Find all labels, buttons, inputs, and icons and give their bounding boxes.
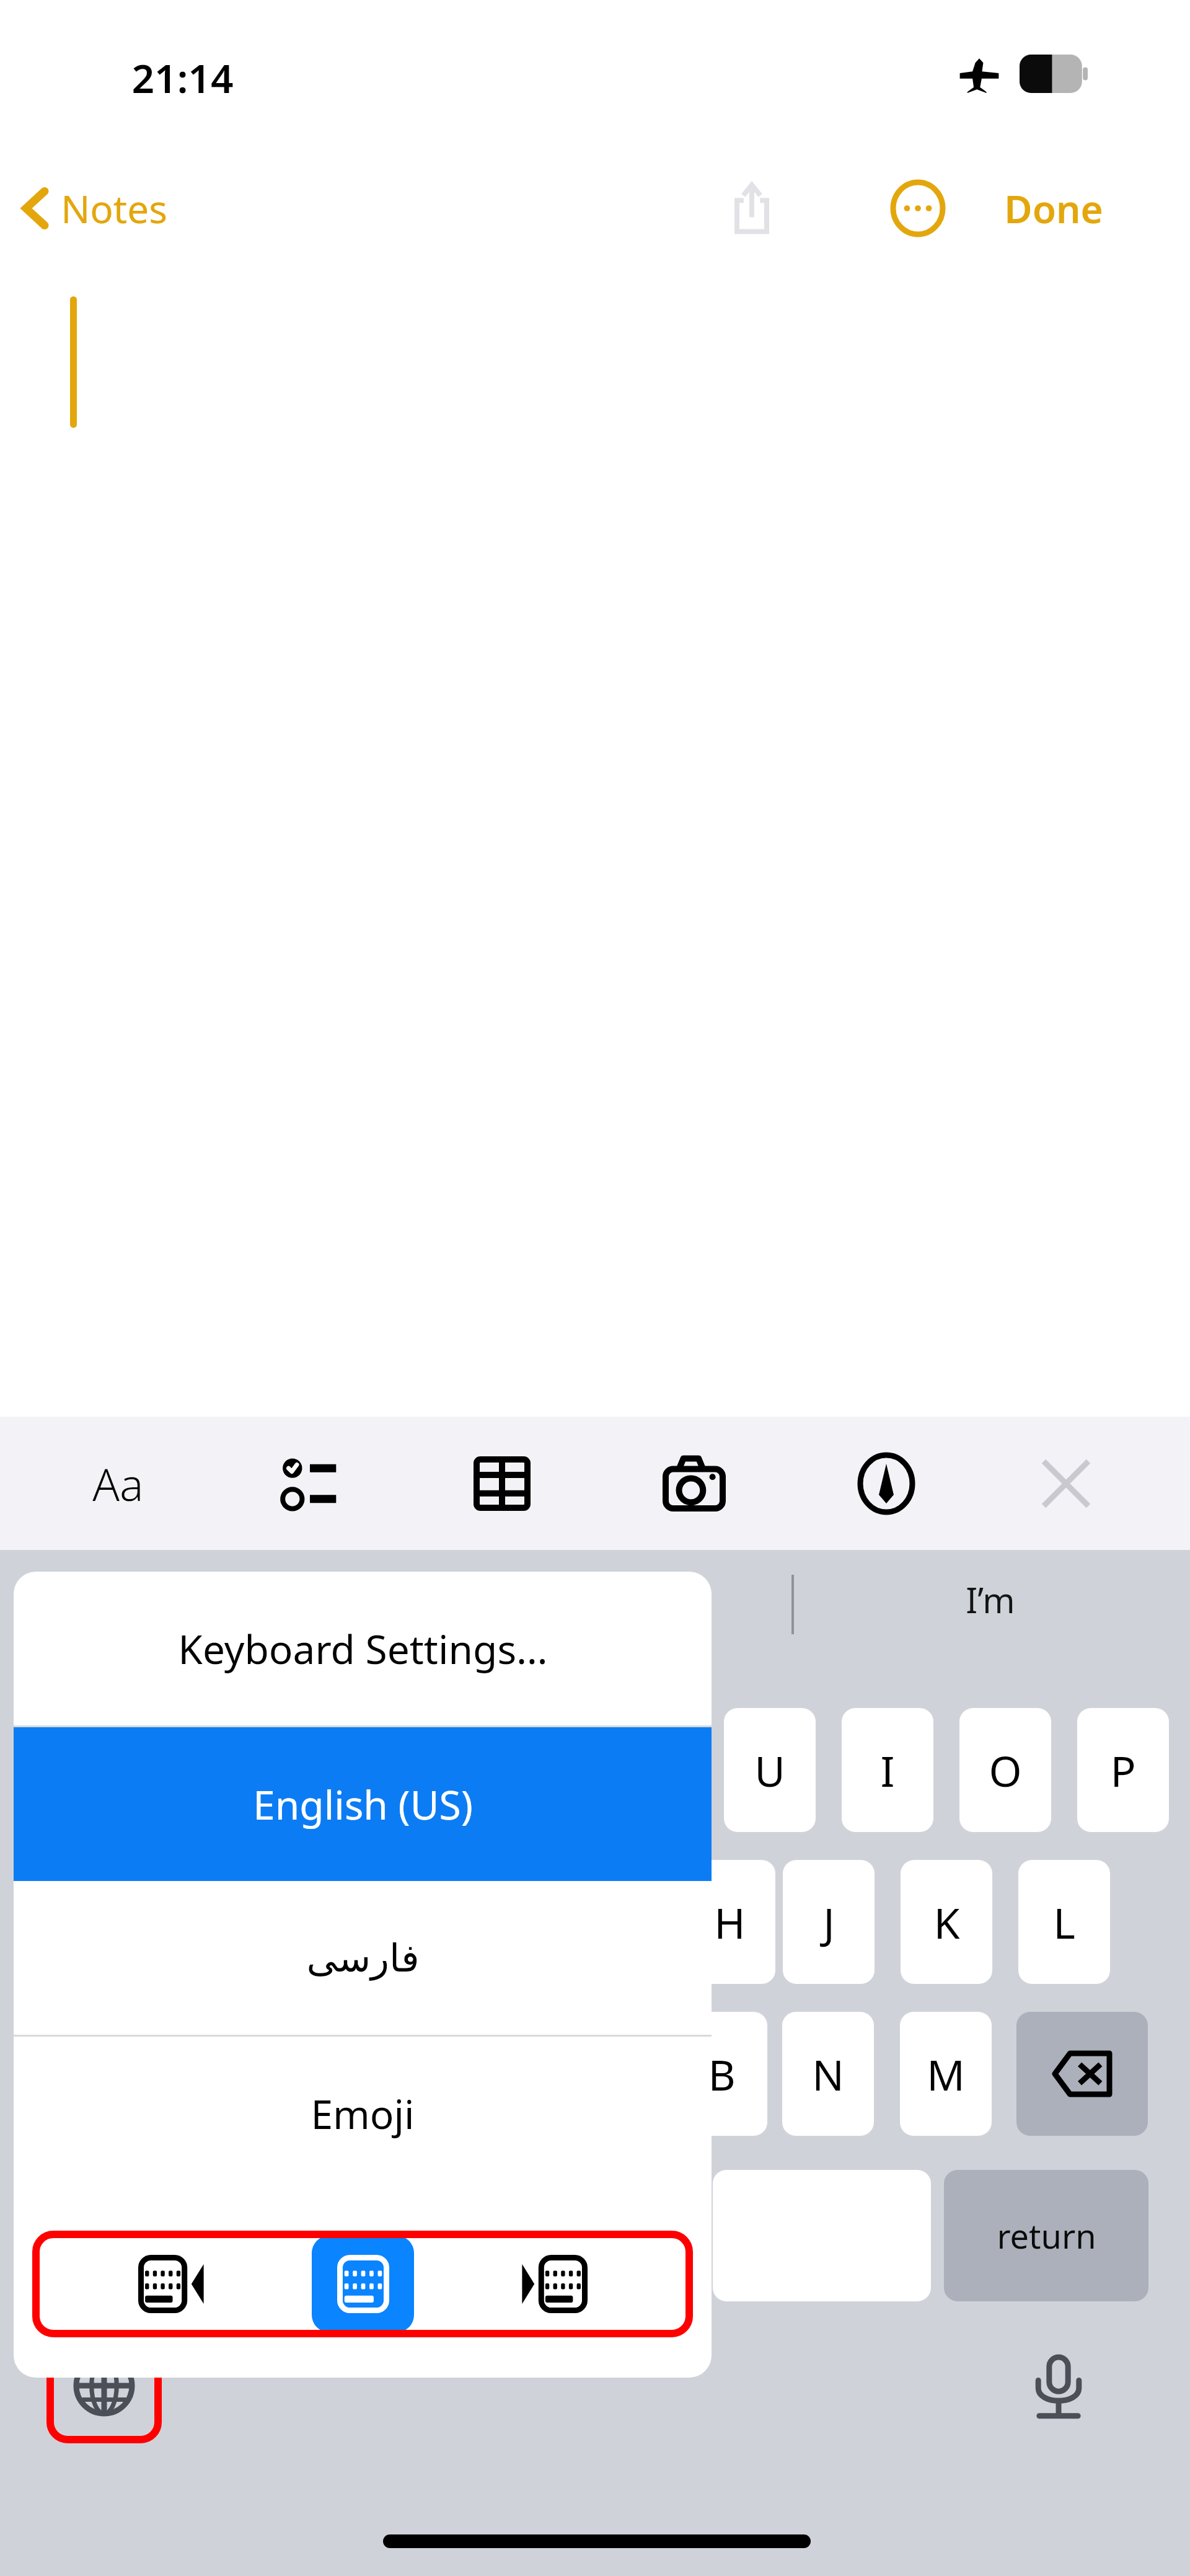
staticText: Aa <box>92 1453 144 1514</box>
staticText: L <box>1053 1893 1075 1951</box>
button[interactable]: K <box>901 1860 992 1984</box>
staticText: B <box>708 2045 736 2103</box>
staticText: J <box>823 1893 835 1951</box>
staticText: K <box>933 1893 960 1951</box>
button[interactable]: Notes <box>12 169 178 248</box>
button[interactable]: I’m <box>885 1562 1096 1637</box>
staticText: Keyboard Settings… <box>178 1622 548 1676</box>
button[interactable]: P <box>1077 1708 1169 1832</box>
button[interactable]: Close <box>1019 1436 1113 1531</box>
button[interactable]: N <box>782 2012 874 2136</box>
staticText: I’m <box>966 1576 1015 1623</box>
staticText: 21:14 <box>131 51 234 105</box>
button[interactable]: J <box>783 1860 875 1984</box>
button[interactable]: Text format <box>71 1436 165 1531</box>
staticText: N <box>812 2045 844 2103</box>
staticText: English (US) <box>253 1777 473 1831</box>
button[interactable]: Delete <box>1016 2012 1148 2136</box>
button[interactable]: Dock keyboard left <box>121 2236 223 2332</box>
button[interactable]: B <box>676 2012 767 2136</box>
button[interactable]: Share <box>713 169 791 248</box>
button[interactable]: U <box>724 1708 816 1832</box>
staticText: O <box>989 1742 1022 1799</box>
staticText: H <box>714 1893 746 1951</box>
button[interactable]: I <box>842 1708 933 1832</box>
staticText: M <box>927 2045 965 2103</box>
button[interactable]: H <box>684 1860 775 1984</box>
button[interactable]: Keyboard Settings… <box>14 1572 712 1725</box>
button[interactable]: Space <box>713 2170 931 2301</box>
staticText: U <box>754 1742 785 1799</box>
button[interactable]: Done <box>990 169 1117 248</box>
button[interactable]: Dock keyboard <box>312 2236 414 2332</box>
button[interactable]: Table <box>455 1436 549 1531</box>
button[interactable]: Dock keyboard right <box>502 2236 604 2332</box>
button[interactable]: Markup <box>839 1436 933 1531</box>
button[interactable]: Switch keyboard <box>46 2328 162 2443</box>
button[interactable]: Camera <box>647 1436 741 1531</box>
staticText: فارسی <box>306 1936 420 1980</box>
button[interactable]: More options <box>879 169 957 248</box>
button[interactable]: فارسی <box>14 1881 712 2035</box>
staticText: return <box>997 2213 1096 2259</box>
button[interactable]: Emoji <box>14 2037 712 2190</box>
button[interactable]: Dictate <box>1003 2332 1114 2444</box>
staticText: Done <box>1004 182 1103 234</box>
button[interactable]: return <box>944 2170 1148 2301</box>
button[interactable]: L <box>1018 1860 1110 1984</box>
button[interactable]: O <box>959 1708 1051 1832</box>
staticText: P <box>1110 1742 1136 1799</box>
button[interactable]: Checklist <box>263 1436 357 1531</box>
button[interactable]: M <box>900 2012 992 2136</box>
staticText: I <box>880 1742 895 1799</box>
button[interactable]: English (US) <box>14 1727 712 1881</box>
staticText: Notes <box>61 182 167 234</box>
staticText: Emoji <box>311 2087 415 2141</box>
